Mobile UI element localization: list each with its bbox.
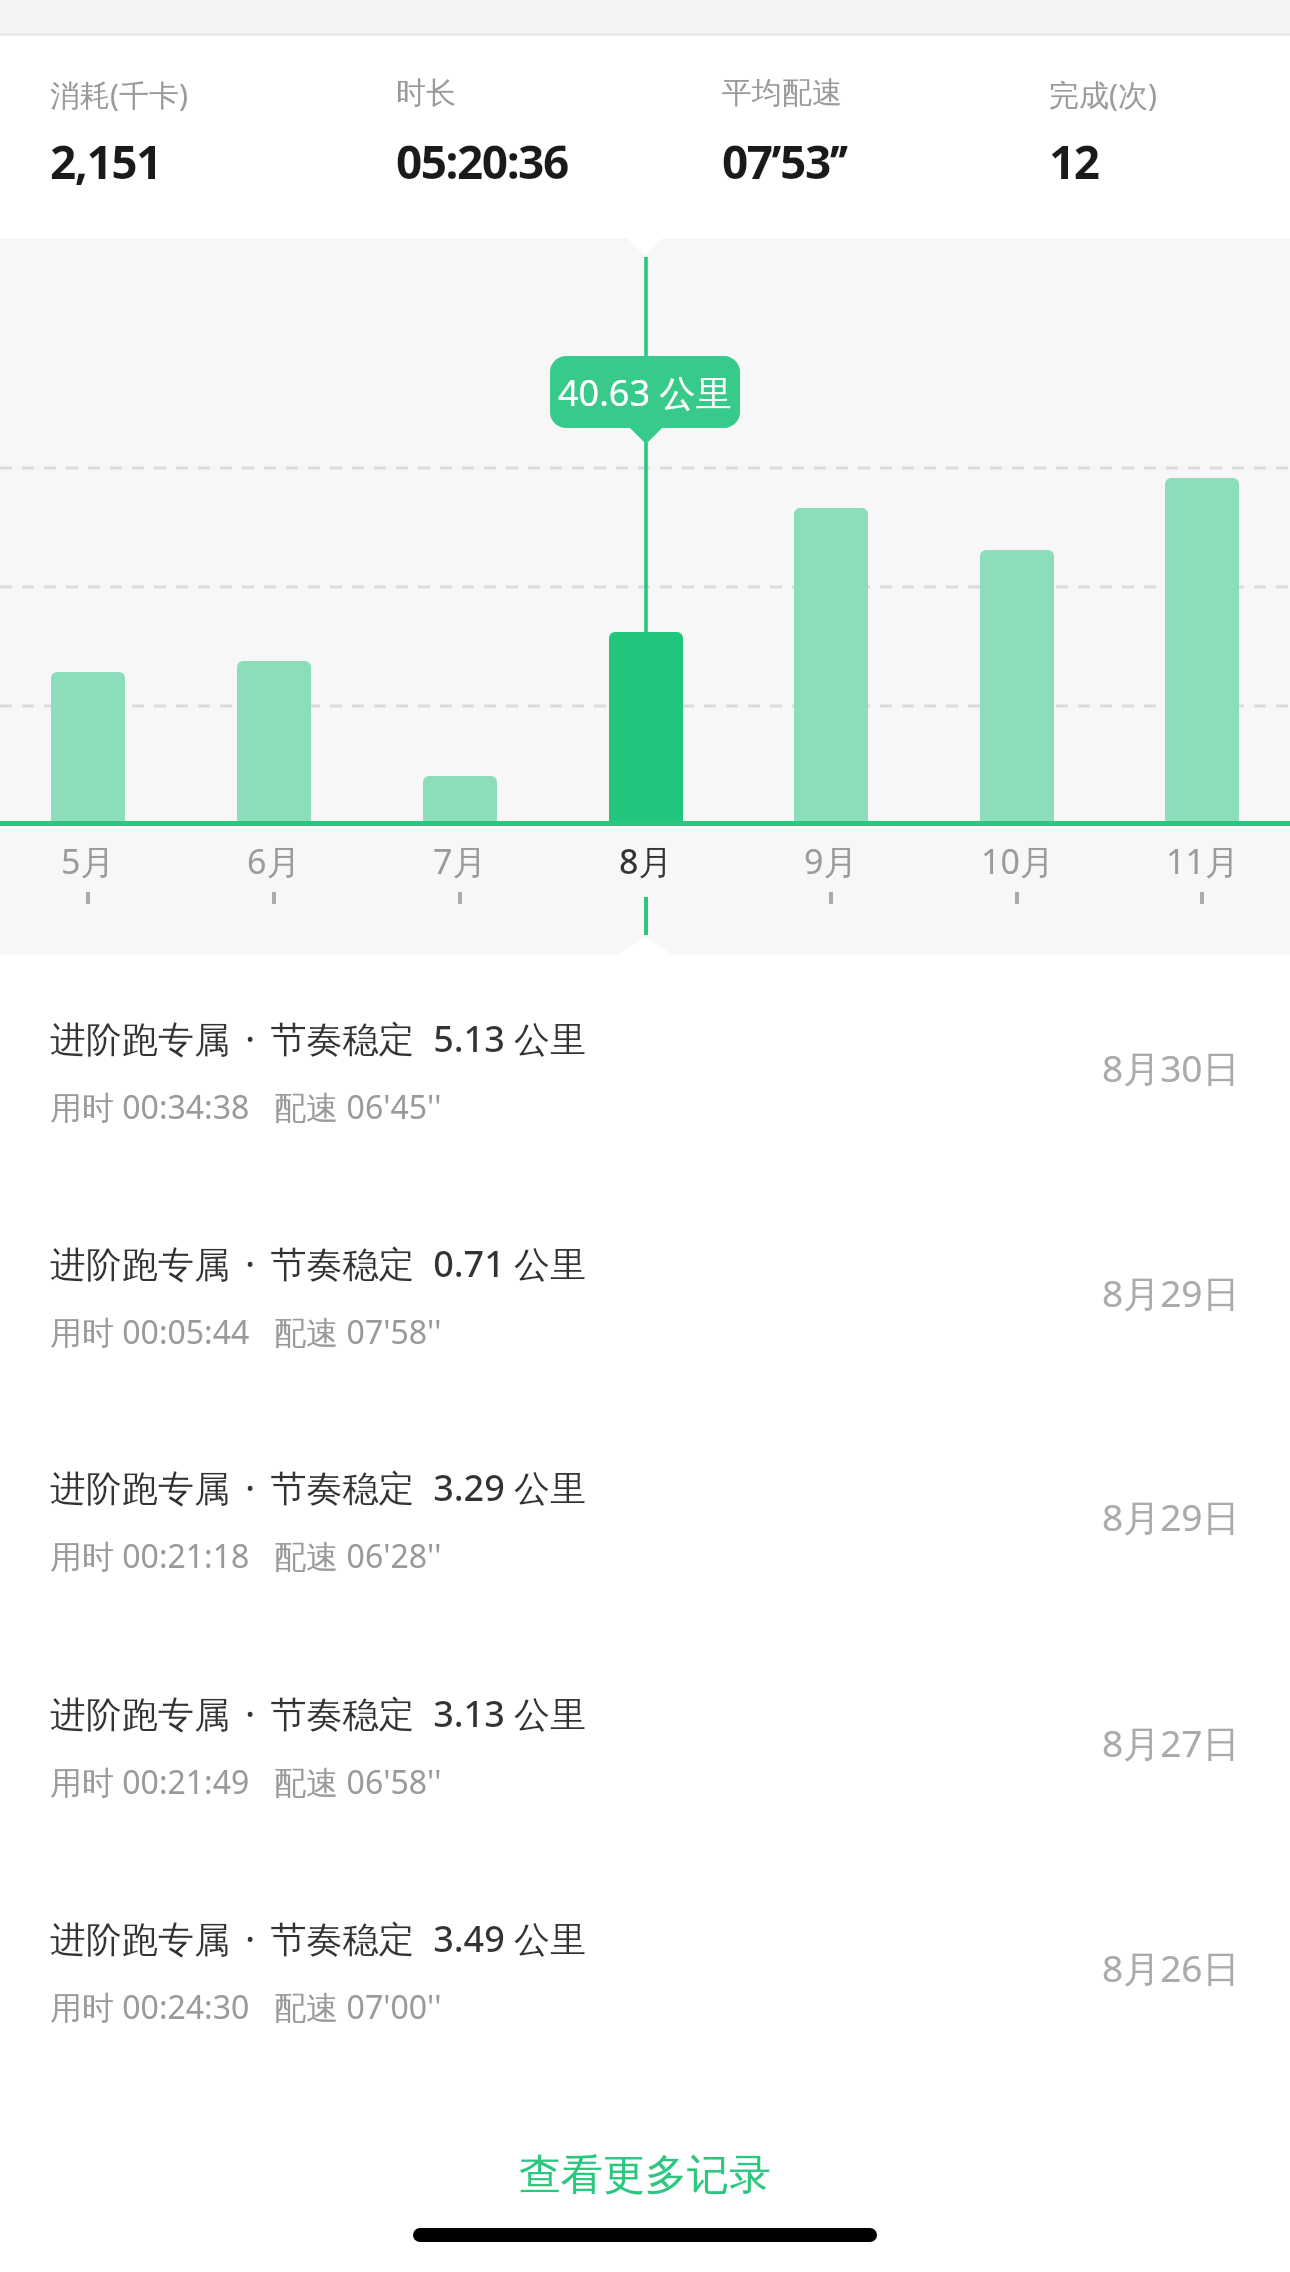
- button[interactable]: 进阶跑专属 · 节奏稳定 5.13 公里: [0, 966, 1290, 1171]
- staticText: 完成(次): [1049, 74, 1157, 115]
- button[interactable]: 查看更多记录: [445, 2140, 845, 2210]
- staticText: 平均配速: [722, 74, 842, 112]
- staticText: 用时 00:21:49 配速 06'58'': [50, 1760, 442, 1804]
- staticText: 进阶跑专属 · 节奏稳定 3.49 公里: [50, 1914, 587, 1963]
- staticText: 40.63 公里: [558, 368, 732, 417]
- button[interactable]: 进阶跑专属 · 节奏稳定 3.49 公里: [0, 1866, 1290, 2071]
- staticText: 10月: [981, 838, 1054, 884]
- staticText: 7月: [433, 838, 487, 884]
- staticText: 8月: [619, 838, 673, 884]
- staticText: 进阶跑专属 · 节奏稳定 5.13 公里: [50, 1014, 587, 1063]
- staticText: 8月29日: [1102, 1267, 1240, 1318]
- staticText: 用时 00:21:18 配速 06'28'': [50, 1534, 442, 1578]
- staticText: 进阶跑专属 · 节奏稳定 0.71 公里: [50, 1239, 587, 1288]
- staticText: 11月: [1166, 838, 1239, 884]
- staticText: 进阶跑专属 · 节奏稳定 3.13 公里: [50, 1689, 587, 1738]
- staticText: 9月: [804, 838, 858, 884]
- staticText: 5月: [61, 838, 115, 884]
- button[interactable]: 进阶跑专属 · 节奏稳定 3.13 公里: [0, 1641, 1290, 1846]
- staticText: 8月29日: [1102, 1491, 1240, 1542]
- staticText: 12: [1049, 130, 1099, 193]
- staticText: 05:20:36: [396, 130, 568, 193]
- staticText: 8月27日: [1102, 1717, 1240, 1768]
- staticText: 查看更多记录: [519, 2149, 771, 2202]
- staticText: 8月26日: [1102, 1942, 1240, 1993]
- button[interactable]: 进阶跑专属 · 节奏稳定 0.71 公里: [0, 1191, 1290, 1396]
- staticText: 时长: [396, 74, 456, 112]
- staticText: 6月: [247, 838, 301, 884]
- staticText: 消耗(千卡): [50, 74, 188, 115]
- staticText: 用时 00:24:30 配速 07'00'': [50, 1985, 442, 2029]
- staticText: 8月30日: [1102, 1042, 1240, 1093]
- staticText: 2,151: [50, 130, 161, 193]
- button[interactable]: 进阶跑专属 · 节奏稳定 3.29 公里: [0, 1415, 1290, 1620]
- staticText: 用时 00:05:44 配速 07'58'': [50, 1310, 442, 1354]
- staticText: 进阶跑专属 · 节奏稳定 3.29 公里: [50, 1463, 587, 1512]
- staticText: 用时 00:34:38 配速 06'45'': [50, 1085, 442, 1129]
- staticText: 07’53’’: [722, 130, 847, 193]
